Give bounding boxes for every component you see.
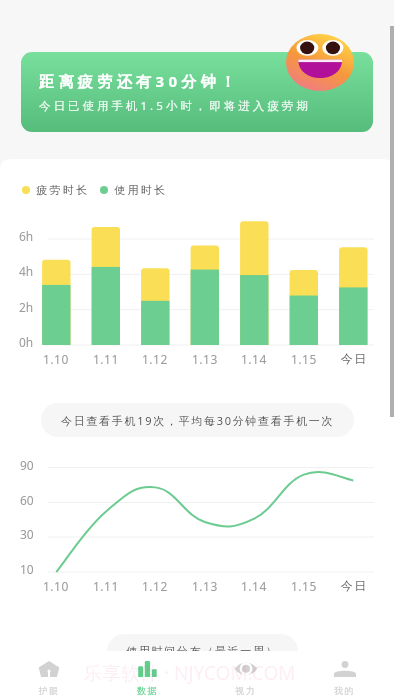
staticText: 数据 — [137, 685, 158, 696]
staticText: 1.14 — [241, 351, 267, 367]
staticText: 30 — [20, 526, 34, 542]
button[interactable]: 使用时间分布（最近一周） — [107, 634, 298, 668]
button[interactable]: 护眼 — [0, 651, 98, 700]
button[interactable]: 视力 — [196, 651, 295, 700]
staticText: 2h — [19, 299, 34, 315]
staticText: 视力 — [235, 685, 256, 696]
staticText: 0h — [19, 334, 34, 350]
staticText: 1.11 — [93, 578, 119, 594]
staticText: 1.10 — [43, 351, 69, 367]
staticText: 今日查看手机19次，平均每30分钟查看手机一次 — [61, 413, 335, 428]
staticText: 1.15 — [291, 578, 317, 594]
staticText: 1.13 — [192, 351, 218, 367]
staticText: 1.12 — [142, 578, 168, 594]
staticText: 1.10 — [43, 578, 69, 594]
staticText: 90 — [20, 457, 34, 473]
staticText: 今日已使用手机1.5小时，即将进入疲劳期 — [39, 98, 311, 114]
staticText: 使用时长 — [114, 183, 168, 197]
staticText: 1.15 — [291, 351, 317, 367]
staticText: 1.13 — [192, 578, 218, 594]
staticText: 距离疲劳还有30分钟！ — [39, 71, 240, 91]
staticText: 1.14 — [241, 578, 267, 594]
staticText: 1.12 — [142, 351, 168, 367]
button[interactable]: 距离疲劳还有30分钟！ — [21, 52, 373, 132]
staticText: 我的 — [334, 685, 355, 696]
staticText: 1.11 — [93, 351, 119, 367]
staticText: 60 — [20, 492, 34, 508]
staticText: 6h — [19, 228, 34, 244]
button[interactable]: 数据 — [98, 651, 196, 700]
staticText: 4h — [19, 263, 34, 279]
staticText: 今日 — [340, 578, 367, 593]
staticText: 乐享软件 · NJYCOM.COM — [83, 660, 296, 686]
staticText: 今日 — [340, 351, 367, 366]
staticText: 10 — [20, 561, 34, 577]
staticText: 疲劳时长 — [36, 183, 90, 197]
staticText: 护眼 — [39, 685, 60, 696]
button[interactable]: 今日查看手机19次，平均每30分钟查看手机一次 — [41, 403, 354, 437]
staticText: 使用时间分布（最近一周） — [126, 644, 279, 658]
button[interactable]: 我的 — [295, 651, 394, 700]
